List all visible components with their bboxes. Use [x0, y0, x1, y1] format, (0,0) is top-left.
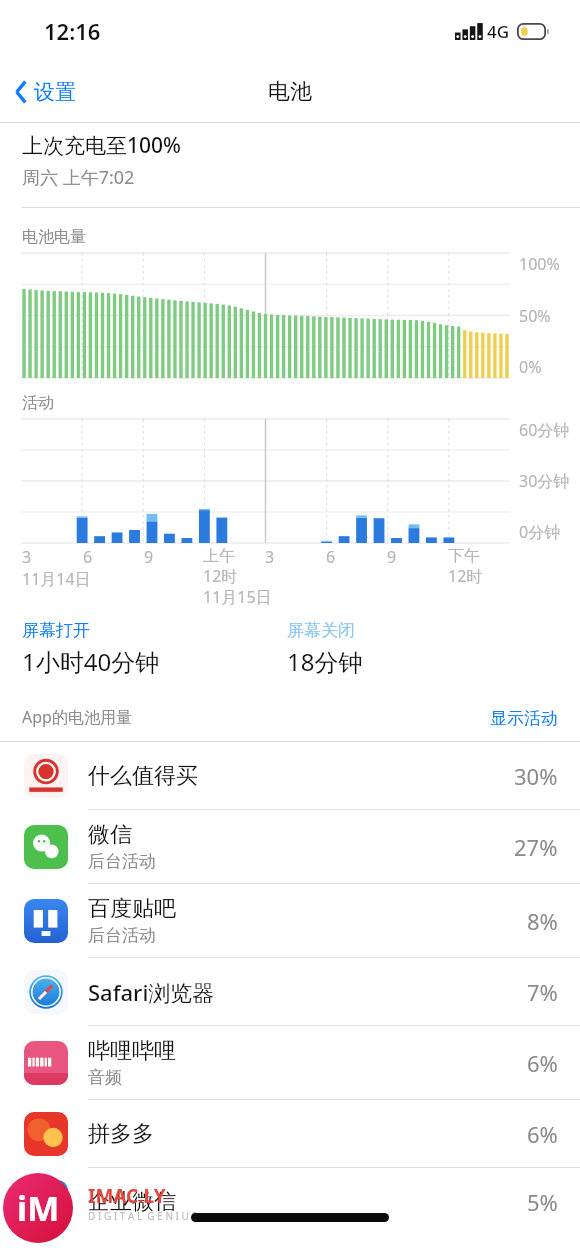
staticText: 8%	[527, 906, 558, 936]
staticText: 周六 上午7:02	[22, 165, 135, 190]
staticText: 下午 12时	[448, 546, 483, 586]
staticText: 企业微信	[88, 1188, 176, 1216]
staticText: 30分钟	[519, 470, 570, 492]
staticText: 50%	[519, 305, 551, 327]
staticText: 3	[22, 546, 32, 568]
staticText: 1小时40分钟	[22, 645, 160, 678]
staticText: 0分钟	[519, 521, 561, 543]
staticText: 哔哩哔哩	[88, 1037, 176, 1065]
staticText: 6%	[527, 1119, 558, 1149]
staticText: 5%	[527, 1187, 558, 1217]
staticText: 4G	[487, 20, 510, 43]
staticText: 6	[83, 546, 93, 568]
staticText: 7%	[527, 977, 558, 1007]
staticText: 什么值得买	[88, 762, 198, 790]
staticText: Safari浏览器	[88, 977, 215, 1007]
staticText: 微信	[88, 821, 132, 849]
staticText: 9	[144, 546, 154, 568]
button[interactable]: 微信	[0, 810, 580, 883]
button[interactable]: 哔哩哔哩	[0, 1026, 580, 1099]
staticText: 3	[265, 546, 275, 568]
staticText: 拼多多	[88, 1120, 154, 1148]
other: Cellular signal	[455, 23, 481, 40]
staticText: 上午 12时	[203, 546, 238, 586]
staticText: iM	[17, 1185, 60, 1231]
staticText: 设置	[34, 79, 76, 105]
button[interactable]: 企业微信	[0, 1168, 580, 1235]
staticText: 屏幕打开	[22, 620, 90, 641]
staticText: 60分钟	[519, 419, 570, 441]
staticText: 显示活动	[490, 708, 558, 726]
button[interactable]: 显示活动	[478, 704, 580, 730]
button[interactable]: 设置	[0, 71, 90, 113]
other: Battery low	[517, 23, 550, 40]
staticText: 27%	[514, 832, 558, 862]
staticText: 电池电量	[22, 227, 86, 247]
staticText: 音频	[88, 1067, 122, 1088]
staticText: IMAC.LY	[88, 1183, 166, 1209]
staticText: D I G I T A L G E N I U S	[88, 1209, 197, 1223]
staticText: 18分钟	[287, 645, 363, 678]
staticText: 11月14日	[22, 568, 91, 590]
staticText: 12:16	[44, 16, 101, 46]
staticText: 30%	[514, 761, 558, 791]
staticText: 屏幕关闭	[287, 620, 355, 641]
staticText: 后台活动	[88, 925, 156, 946]
button[interactable]: Safari浏览器	[0, 958, 580, 1025]
staticText: 电池	[268, 78, 312, 106]
button[interactable]: 什么值得买	[0, 742, 580, 809]
staticText: 百度贴吧	[88, 895, 176, 923]
staticText: App的电池用量	[22, 706, 132, 728]
button[interactable]: 拼多多	[0, 1100, 580, 1167]
staticText: 9	[387, 546, 397, 568]
staticText: 0%	[519, 356, 542, 378]
staticText: 100%	[519, 253, 560, 275]
staticText: 6%	[527, 1048, 558, 1078]
staticText: 11月15日	[203, 586, 272, 608]
staticText: 6	[326, 546, 336, 568]
staticText: 后台活动	[88, 851, 156, 872]
staticText: 活动	[22, 393, 54, 413]
staticText: 上次充电至100%	[22, 131, 181, 160]
button[interactable]: 百度贴吧	[0, 884, 580, 957]
